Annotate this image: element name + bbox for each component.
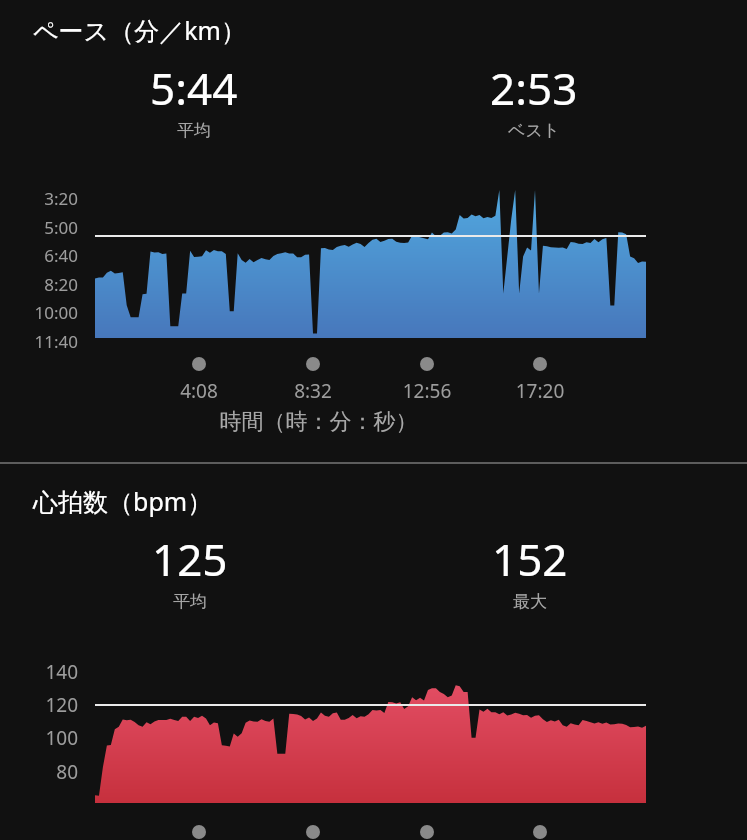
staticText: 2:53	[490, 58, 578, 118]
staticText: 80	[0, 759, 78, 785]
staticText: 140	[0, 659, 78, 685]
button[interactable]: 152	[492, 529, 568, 610]
staticText: 8:32	[263, 378, 363, 404]
staticText: 4:08	[149, 378, 249, 404]
staticText: 心拍数（bpm）	[33, 484, 213, 518]
button[interactable]: 5:44	[150, 58, 238, 139]
staticText: 100	[0, 725, 78, 751]
staticText: 8:20	[0, 273, 78, 296]
button[interactable]: 2:53	[490, 58, 578, 139]
staticText: 6:40	[0, 244, 78, 267]
staticText: ペース（分／km）	[33, 13, 246, 47]
staticText: 10:00	[0, 301, 78, 324]
staticText: 最大	[513, 591, 547, 612]
staticText: 125	[152, 529, 228, 589]
staticText: 平均	[177, 120, 211, 141]
staticText: 平均	[173, 591, 207, 612]
staticText: 120	[0, 692, 78, 718]
staticText: 3:20	[0, 187, 78, 210]
staticText: 5:00	[0, 216, 78, 239]
staticText: 時間（時：分：秒）	[0, 408, 637, 436]
button[interactable]: 125	[152, 529, 228, 610]
staticText: ベスト	[508, 120, 561, 141]
staticText: 12:56	[377, 378, 477, 404]
staticText: 17:20	[490, 378, 590, 404]
staticText: 5:44	[150, 58, 238, 118]
staticText: 11:40	[0, 330, 78, 353]
staticText: 152	[492, 529, 568, 589]
